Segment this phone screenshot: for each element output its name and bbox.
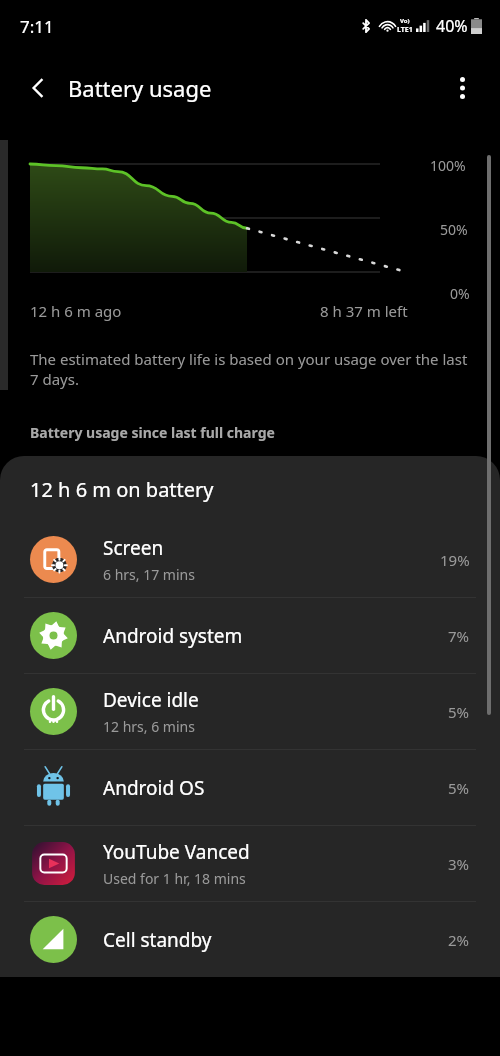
button[interactable]: Back <box>12 62 64 114</box>
staticText: 40% <box>436 15 468 37</box>
staticText: Android system <box>103 623 243 649</box>
staticText: Android OS <box>103 775 205 801</box>
staticText: 5% <box>448 702 470 722</box>
staticText: 12 h 6 m ago <box>30 301 122 321</box>
staticText: 7:11 <box>20 15 54 38</box>
staticText: YouTube Vanced <box>103 839 250 865</box>
staticText: 50% <box>440 220 468 239</box>
staticText: Vo) <box>400 17 410 25</box>
button[interactable]: Android system <box>0 598 500 673</box>
staticText: Battery usage <box>68 73 212 103</box>
staticText: 0% <box>450 284 470 303</box>
button[interactable]: More options <box>436 62 488 114</box>
staticText: LTE1 <box>397 25 413 35</box>
staticText: 12 hrs, 6 mins <box>103 717 195 736</box>
staticText: Screen <box>103 535 164 561</box>
staticText: The estimated battery life is based on y… <box>30 349 470 389</box>
button[interactable]: YouTube Vanced <box>0 826 500 901</box>
staticText: Device idle <box>103 687 199 713</box>
staticText: Used for 1 hr, 18 mins <box>103 869 246 888</box>
button[interactable]: Android OS <box>0 750 500 825</box>
button[interactable]: Cell standby <box>0 902 500 977</box>
staticText: 2% <box>448 930 470 950</box>
staticText: Battery usage since last full charge <box>30 423 275 442</box>
staticText: 7% <box>448 626 470 646</box>
staticText: 8 h 37 m left <box>320 301 408 321</box>
staticText: 6 hrs, 17 mins <box>103 565 195 584</box>
staticText: 19% <box>440 550 470 570</box>
staticText: 100% <box>430 156 466 175</box>
staticText: 3% <box>448 854 470 874</box>
staticText: 12 h 6 m on battery <box>30 476 214 503</box>
button[interactable]: Device idle <box>0 674 500 749</box>
staticText: Cell standby <box>103 927 212 953</box>
button[interactable]: Screen <box>0 522 500 597</box>
staticText: 5% <box>448 778 470 798</box>
